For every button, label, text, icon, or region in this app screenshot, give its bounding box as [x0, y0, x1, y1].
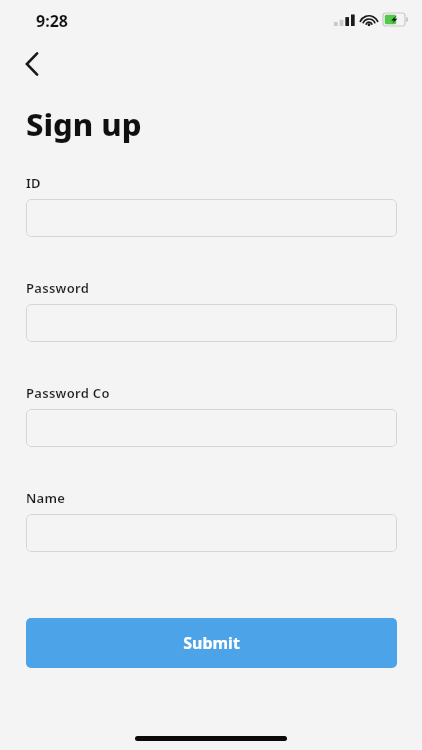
button[interactable] [26, 304, 397, 342]
staticText: Password [26, 279, 90, 297]
button[interactable] [26, 409, 397, 447]
staticText: Name [26, 489, 66, 507]
staticText: Submit [183, 632, 240, 654]
staticText: ID [26, 174, 41, 192]
staticText: Password Co [26, 384, 110, 402]
button[interactable] [26, 199, 397, 237]
staticText: 9:28 [36, 10, 68, 32]
button[interactable]: Submit [26, 618, 397, 668]
staticText: Sign up [26, 103, 142, 145]
button[interactable]: Back [12, 44, 52, 84]
button[interactable] [26, 514, 397, 552]
